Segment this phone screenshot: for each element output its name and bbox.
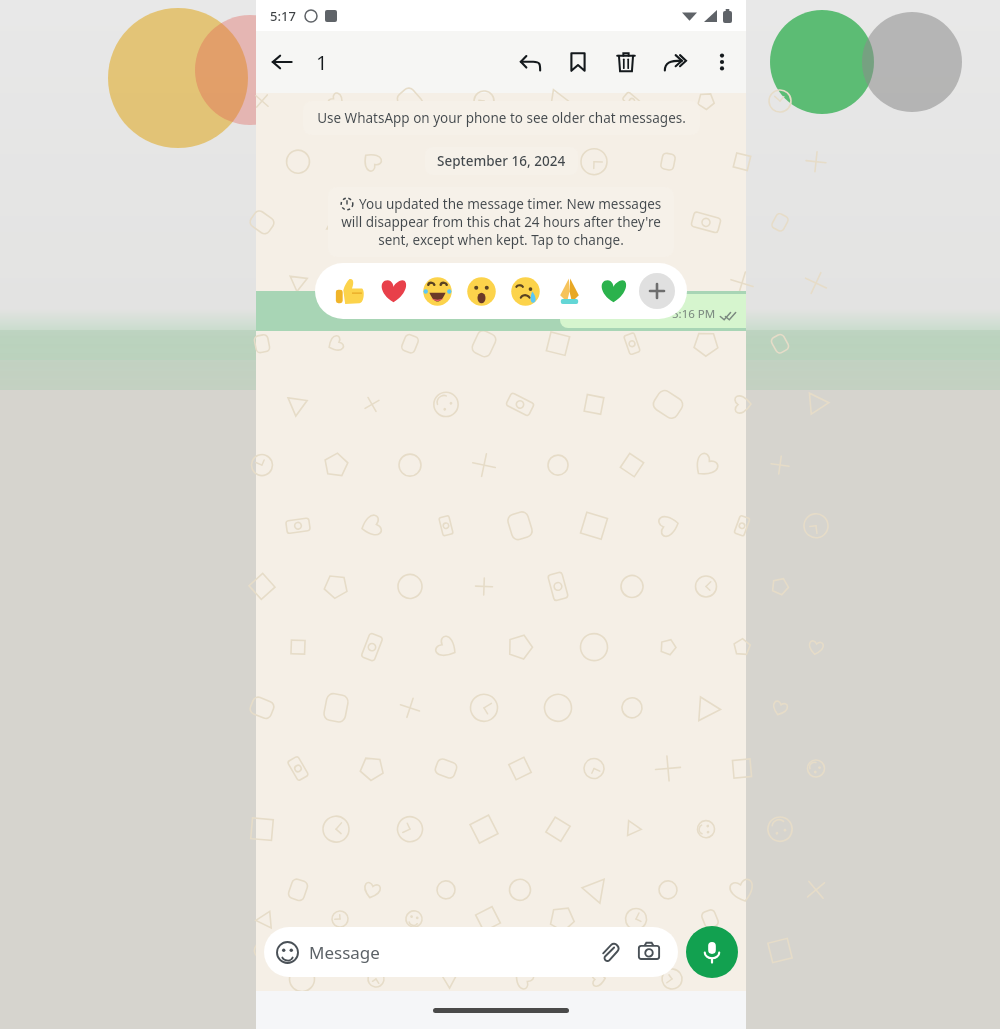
button[interactable]: React 1 xyxy=(371,271,415,311)
staticText: Message xyxy=(309,941,380,964)
staticText: 1 xyxy=(316,49,328,76)
staticText: 5:17 xyxy=(270,7,296,25)
staticText: sent, except when kept. Tap to change. xyxy=(378,231,624,249)
button[interactable]: More options xyxy=(698,34,746,90)
button[interactable]: Use WhatsApp on your phone to see older … xyxy=(303,101,700,135)
button[interactable]: React 3 xyxy=(459,271,503,311)
staticText: You updated the message timer. New messa… xyxy=(359,195,662,213)
staticText: will disappear from this chat 24 hours a… xyxy=(341,213,661,231)
button[interactable]: React 5 xyxy=(547,271,591,311)
button[interactable]: Attach xyxy=(592,935,626,969)
staticText: WABetaInfo xyxy=(574,300,664,322)
staticText: 5:16 PM xyxy=(672,306,716,322)
button[interactable]: React 4 xyxy=(503,271,547,311)
other: Emoji xyxy=(276,941,299,964)
button[interactable]: React 6 xyxy=(591,271,635,311)
button[interactable]: React 0 xyxy=(327,271,371,311)
button[interactable]: React 2 xyxy=(415,271,459,311)
button[interactable]: Forward xyxy=(650,34,698,90)
button[interactable]: Reply xyxy=(506,34,554,90)
staticText: September 16, 2024 xyxy=(437,152,566,170)
button[interactable]: Camera xyxy=(632,935,666,969)
button[interactable]: WABetaInfo xyxy=(256,291,746,331)
staticText: Use WhatsApp on your phone to see older … xyxy=(317,109,686,127)
button[interactable]: Emoji xyxy=(264,927,678,977)
button[interactable]: Back xyxy=(256,36,308,88)
button[interactable]: You updated the message timer. New messa… xyxy=(328,187,674,257)
button[interactable]: Record voice message xyxy=(686,926,738,978)
button[interactable]: Delete xyxy=(602,34,650,90)
button[interactable]: Bookmark xyxy=(554,34,602,90)
button[interactable]: More reactions xyxy=(639,273,675,309)
